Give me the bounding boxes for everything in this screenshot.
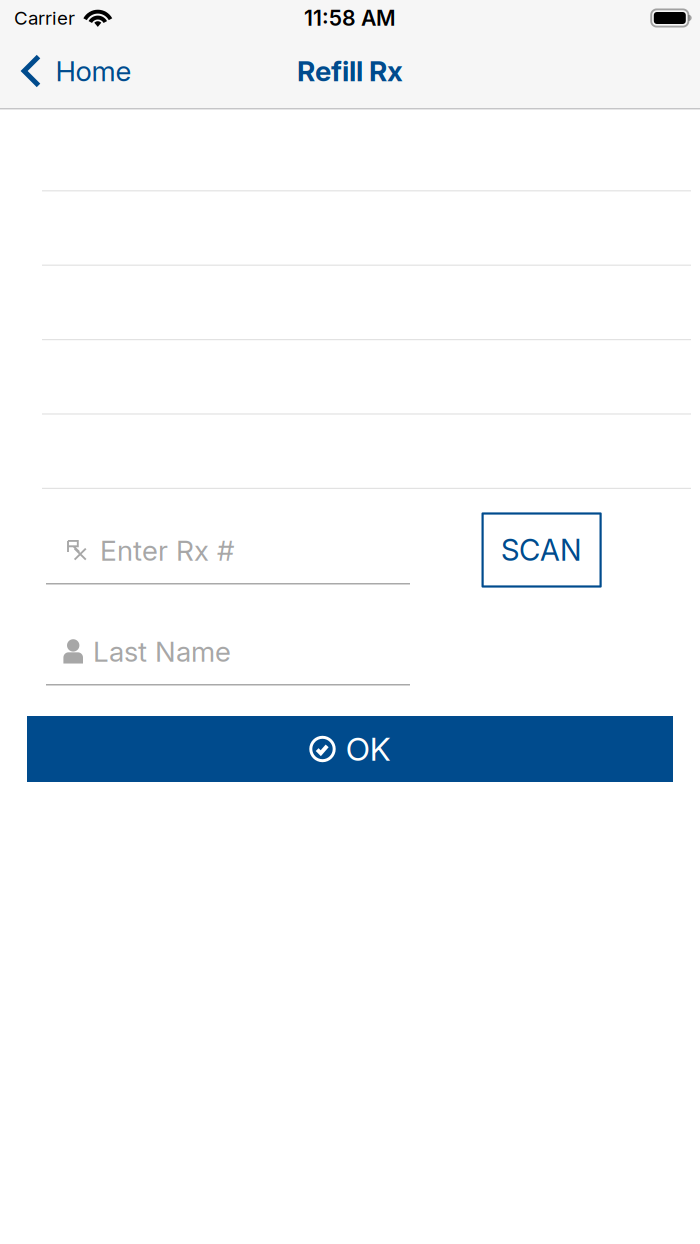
button[interactable]: Enter Rx #: [46, 531, 410, 584]
staticText: Carrier: [14, 7, 75, 29]
staticText: OK: [346, 730, 391, 768]
button[interactable]: OK: [27, 716, 673, 782]
staticText: Enter Rx #: [100, 534, 234, 567]
staticText: SCAN: [501, 532, 582, 568]
staticText: Refill Rx: [297, 54, 403, 88]
staticText: Last Name: [93, 635, 231, 668]
staticText: Home: [55, 54, 131, 88]
button[interactable]: SCAN: [483, 513, 601, 586]
staticText: 11:58 AM: [304, 5, 396, 31]
button[interactable]: Back to Home: [0, 40, 147, 107]
button[interactable]: Last Name: [46, 632, 410, 685]
